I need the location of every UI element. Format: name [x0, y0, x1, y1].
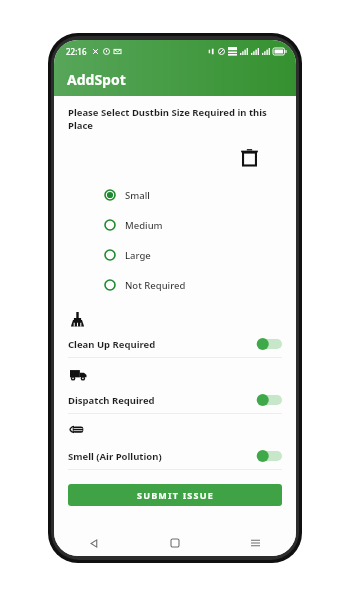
button[interactable]: Dustbin: [238, 146, 260, 168]
button[interactable]: Small: [68, 180, 282, 210]
button[interactable]: Recents: [215, 530, 296, 556]
button[interactable]: Not Required: [68, 270, 282, 300]
staticText: SUBMIT ISSUE: [137, 489, 214, 501]
button[interactable]: [256, 337, 282, 351]
button[interactable]: Medium: [68, 210, 282, 240]
staticText: Small: [125, 189, 150, 202]
staticText: Dispatch Required: [68, 394, 155, 407]
staticText: Large: [125, 249, 151, 262]
button[interactable]: [256, 393, 282, 407]
button[interactable]: Back: [54, 530, 134, 556]
staticText: Please Select Dustbin Size Required in t…: [68, 106, 282, 132]
button[interactable]: Large: [68, 240, 282, 270]
button[interactable]: SUBMIT ISSUE: [68, 484, 282, 506]
button[interactable]: Smell (Air Pollution): [68, 447, 282, 465]
staticText: Not Required: [125, 279, 186, 292]
button[interactable]: Home: [134, 530, 215, 556]
staticText: Clean Up Required: [68, 338, 156, 351]
staticText: 22:16: [66, 46, 87, 57]
staticText: AddSpot: [67, 70, 126, 89]
button[interactable]: [256, 449, 282, 463]
button[interactable]: Dispatch Required: [68, 391, 282, 409]
button[interactable]: Clean Up Required: [68, 335, 282, 353]
staticText: Medium: [125, 219, 163, 232]
staticText: Smell (Air Pollution): [68, 450, 162, 463]
